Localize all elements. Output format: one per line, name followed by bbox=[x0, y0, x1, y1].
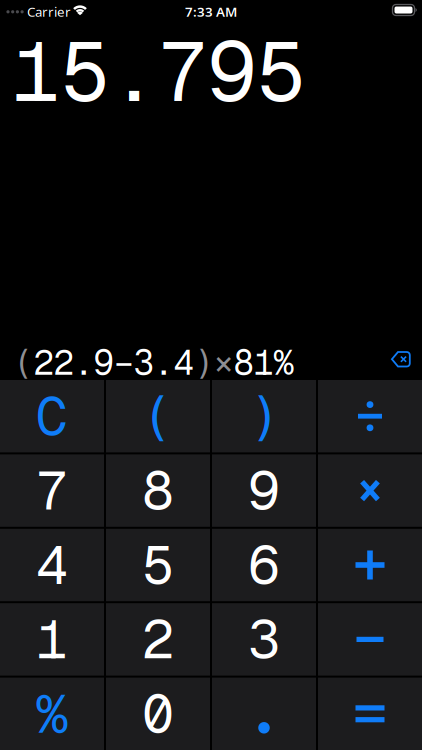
staticText: 22.9−3.4 bbox=[33, 340, 193, 385]
staticText: 7:33 AM bbox=[185, 3, 237, 20]
button[interactable]: 1 bbox=[0, 603, 104, 676]
staticText: ) bbox=[248, 381, 280, 451]
staticText: 6 bbox=[248, 530, 280, 600]
staticText: C bbox=[36, 381, 68, 451]
button[interactable]: Multiply bbox=[318, 454, 422, 527]
staticText: 2 bbox=[142, 605, 174, 674]
staticText: ( bbox=[142, 381, 174, 451]
staticText: 9 bbox=[248, 456, 280, 525]
staticText: % bbox=[36, 679, 68, 748]
staticText: 4 bbox=[36, 530, 68, 600]
staticText: 15.795 bbox=[11, 18, 305, 125]
staticText: 81% bbox=[233, 340, 293, 385]
button[interactable]: Add bbox=[318, 529, 422, 601]
button[interactable]: C bbox=[0, 380, 104, 452]
button[interactable]: Delete bbox=[391, 351, 411, 367]
button[interactable]: Subtract bbox=[318, 603, 422, 676]
staticText: ( bbox=[13, 340, 33, 385]
staticText: 7 bbox=[36, 456, 68, 525]
staticText: )× bbox=[193, 340, 233, 385]
button[interactable]: Equals bbox=[318, 678, 422, 750]
button[interactable]: Decimal point bbox=[212, 678, 316, 750]
button[interactable]: 8 bbox=[106, 454, 210, 527]
staticText: Carrier bbox=[27, 3, 71, 20]
button[interactable]: Divide bbox=[318, 380, 422, 452]
button[interactable]: 2 bbox=[106, 603, 210, 676]
button[interactable]: % bbox=[0, 678, 104, 750]
button[interactable]: 3 bbox=[212, 603, 316, 676]
button[interactable]: ( bbox=[106, 380, 210, 452]
staticText: 8 bbox=[142, 456, 174, 525]
staticText: 5 bbox=[142, 530, 174, 600]
button[interactable]: 9 bbox=[212, 454, 316, 527]
button[interactable]: ) bbox=[212, 380, 316, 452]
staticText: 1 bbox=[36, 605, 68, 674]
button[interactable]: 5 bbox=[106, 529, 210, 601]
staticText: 3 bbox=[248, 605, 280, 674]
button[interactable]: 4 bbox=[0, 529, 104, 601]
button[interactable]: 6 bbox=[212, 529, 316, 601]
button[interactable]: 7 bbox=[0, 454, 104, 527]
button[interactable]: 0 bbox=[106, 678, 210, 750]
staticText: 0 bbox=[142, 679, 174, 748]
